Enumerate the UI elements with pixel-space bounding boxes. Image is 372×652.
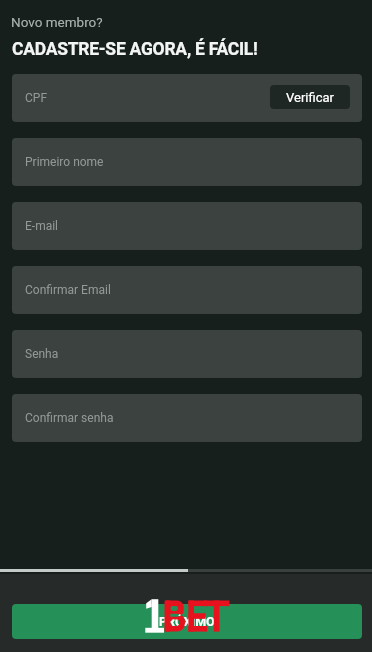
- button[interactable]: Primeiro nome: [12, 138, 362, 186]
- staticText: CADASTRE-SE AGORA, É FÁCIL!: [12, 39, 258, 60]
- staticText: Novo membro?: [11, 14, 103, 30]
- button[interactable]: E-mail: [12, 202, 362, 250]
- button[interactable]: Verificar: [270, 85, 350, 109]
- staticText: PRÓXIMO: [159, 614, 215, 629]
- staticText: Confirmar Email: [25, 283, 111, 297]
- staticText: E-mail: [25, 219, 59, 233]
- staticText: Verificar: [286, 90, 334, 105]
- staticText: CPF: [25, 91, 48, 105]
- button[interactable]: PRÓXIMO: [12, 604, 362, 639]
- button[interactable]: Senha: [12, 330, 362, 378]
- staticText: Confirmar senha: [25, 411, 114, 425]
- staticText: Primeiro nome: [25, 155, 104, 169]
- button[interactable]: CPF: [12, 74, 362, 122]
- other: 1BET: [144, 598, 232, 634]
- staticText: Senha: [25, 347, 59, 361]
- button[interactable]: Confirmar Email: [12, 266, 362, 314]
- button[interactable]: Confirmar senha: [12, 394, 362, 442]
